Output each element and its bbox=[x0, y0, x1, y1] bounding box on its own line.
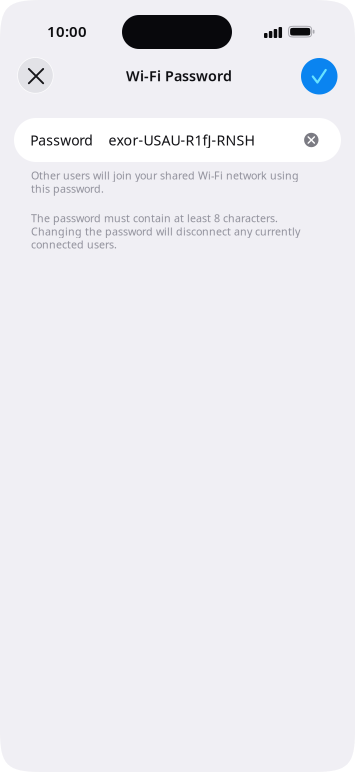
staticText: The password must contain at least 8 cha… bbox=[31, 211, 300, 252]
button[interactable]: Close bbox=[17, 57, 54, 94]
staticText: Password bbox=[30, 131, 93, 149]
staticText: exor-USAU-R1fJ-RNSH bbox=[108, 130, 254, 150]
button[interactable]: Done bbox=[301, 58, 337, 94]
staticText: Other users will join your shared Wi-Fi … bbox=[31, 168, 299, 196]
staticText: 10:00 bbox=[47, 21, 87, 41]
button[interactable]: Password bbox=[14, 118, 341, 162]
staticText: Wi-Fi Password bbox=[126, 66, 232, 85]
button[interactable]: Clear text bbox=[304, 133, 318, 147]
